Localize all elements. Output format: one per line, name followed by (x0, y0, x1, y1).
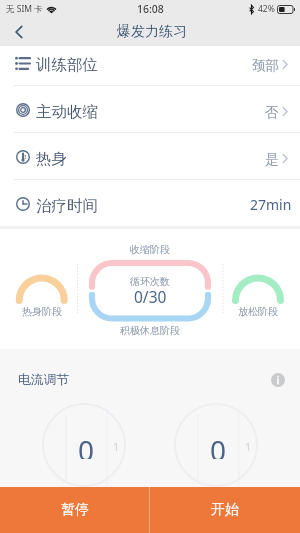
button[interactable]: 返回 (0, 18, 38, 46)
staticText: 颈部 (252, 57, 279, 74)
button[interactable]: 训练部位 (0, 46, 300, 85)
staticText: 循环次数 (130, 275, 170, 288)
staticText: 治疗时间 (36, 196, 98, 216)
staticText: 1 (113, 439, 120, 453)
button[interactable]: 开始 (150, 487, 300, 533)
button[interactable]: 暂停 (0, 487, 149, 533)
staticText: 爆发力练习 (117, 23, 187, 41)
staticText: 0/30 (134, 286, 167, 306)
staticText: 训练部位 (36, 55, 98, 75)
staticText: 否 (265, 104, 279, 121)
staticText: 积极休息阶段 (120, 324, 180, 337)
staticText: 0 (210, 431, 227, 459)
staticText: 0 (78, 431, 95, 459)
staticText: 42% (258, 3, 275, 15)
staticText: 1 (245, 439, 252, 453)
staticText: 热身阶段 (22, 305, 62, 318)
staticText: 收缩阶段 (130, 243, 170, 256)
staticText: 27min (250, 195, 292, 214)
staticText: 无 SIM 卡 (6, 3, 43, 15)
staticText: 暂停 (61, 501, 89, 519)
staticText: 主动收缩 (36, 102, 98, 122)
button[interactable]: 热身 (0, 133, 300, 179)
staticText: 16:08 (137, 2, 164, 16)
staticText: 开始 (211, 501, 239, 519)
button[interactable]: 主动收缩 (0, 86, 300, 132)
staticText: 热身 (36, 149, 67, 169)
staticText: 放松阶段 (238, 305, 278, 318)
button[interactable]: 治疗时间 (0, 180, 300, 226)
staticText: 是 (265, 151, 279, 168)
button[interactable]: 说明 (269, 371, 287, 389)
staticText: 电流调节 (18, 372, 70, 388)
